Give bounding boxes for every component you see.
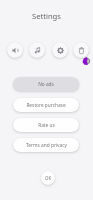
staticText: Settings xyxy=(32,11,61,21)
button[interactable]: No ads xyxy=(13,77,79,91)
button[interactable]: Sound xyxy=(7,42,23,58)
button[interactable]: Settings xyxy=(52,42,68,58)
staticText: OK xyxy=(45,175,52,181)
button[interactable]: Delete xyxy=(73,42,89,58)
button[interactable]: Rate us xyxy=(13,118,79,132)
staticText: Terms and privacy xyxy=(26,142,67,149)
staticText: No ads xyxy=(38,81,54,88)
staticText: Rate us xyxy=(38,122,55,129)
button[interactable]: Terms and privacy xyxy=(13,138,79,152)
button[interactable]: Restore purchase xyxy=(13,98,79,112)
button[interactable]: OK xyxy=(41,171,55,185)
other: Premium xyxy=(82,57,90,65)
button[interactable]: Music xyxy=(29,42,45,58)
staticText: Restore purchase xyxy=(26,102,66,109)
